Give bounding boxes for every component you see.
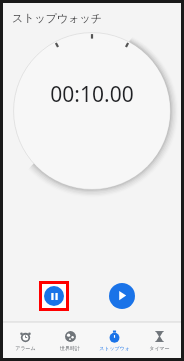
staticText: アラーム [15,345,36,351]
button[interactable]: ラップ [109,283,135,309]
button[interactable]: ストップウォ [92,328,136,353]
other: 一時停止 [44,286,64,306]
staticText: 世界時計 [60,345,80,351]
button[interactable]: 世界時計 [48,328,92,353]
button[interactable]: アラーム [3,328,47,353]
button[interactable]: 一時停止 [44,286,64,306]
button[interactable]: タイマー [137,328,181,353]
staticText: 00:10.00 [50,80,134,109]
staticText: ストップウォ [99,345,130,351]
staticText: ストップウォッチ [12,11,103,25]
staticText: タイマー [149,345,170,351]
